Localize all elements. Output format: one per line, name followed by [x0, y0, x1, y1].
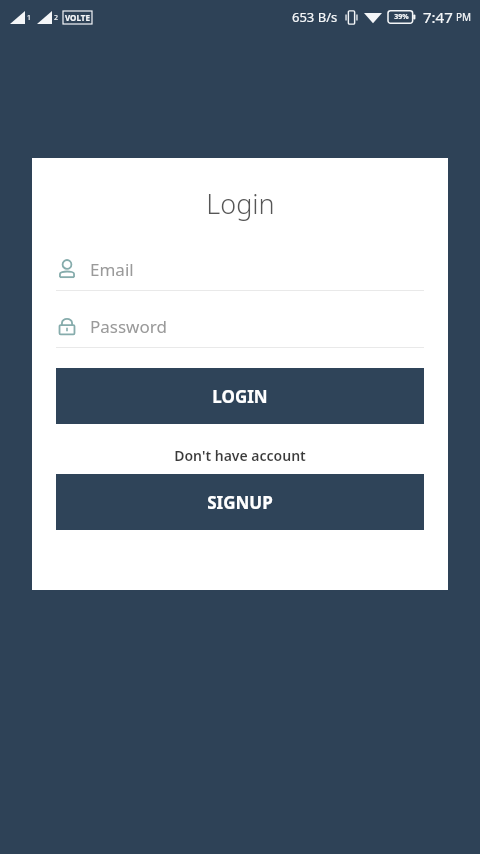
staticText: 7:47 [423, 7, 453, 27]
staticText: Password [90, 315, 167, 338]
staticText: PM [456, 10, 472, 24]
staticText: Don't have account [174, 446, 306, 465]
staticText: SIGNUP [207, 491, 273, 514]
staticText: VOLTE [65, 12, 90, 23]
staticText: 653 B/s [292, 8, 338, 26]
staticText: LOGIN [212, 385, 268, 408]
staticText: 2 [54, 13, 59, 23]
staticText: Email [90, 258, 134, 281]
button[interactable]: SIGNUP [56, 474, 424, 530]
button[interactable]: Email [56, 248, 424, 291]
staticText: Login [206, 185, 275, 222]
button[interactable]: Password [56, 305, 424, 348]
button[interactable]: LOGIN [56, 368, 424, 424]
staticText: 39% [394, 12, 409, 22]
staticText: 1 [27, 13, 32, 23]
